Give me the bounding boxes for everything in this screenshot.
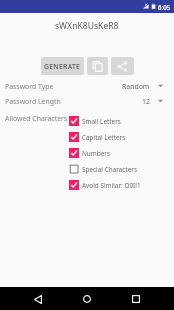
staticText: Numbers (82, 149, 111, 158)
staticText: Allowed Characters (5, 114, 68, 123)
button[interactable]: Recents (125, 288, 147, 310)
staticText: 6:05 (158, 3, 171, 11)
button[interactable]: Small Letters (69, 113, 121, 129)
button[interactable]: Numbers (69, 145, 111, 161)
button[interactable]: Password Type (0, 79, 174, 93)
button[interactable]: Capital Letters (69, 129, 126, 145)
staticText: Small Letters (82, 117, 121, 126)
staticText: GENERATE (44, 62, 81, 71)
staticText: Special Characters (82, 165, 138, 174)
staticText: Capital Letters (82, 133, 126, 142)
button[interactable]: Home (76, 288, 98, 310)
button[interactable]: Avoid Similar: O0Il1 (69, 177, 141, 193)
button[interactable]: Copy (87, 57, 108, 75)
staticText: Password Type (5, 82, 54, 91)
staticText: Password Length (5, 97, 61, 106)
button[interactable]: Password Length (0, 94, 174, 108)
staticText: sWXnK8UsKeR8 (55, 20, 119, 32)
staticText: Random (122, 82, 150, 91)
staticText: Avoid Similar: O0Il1 (82, 181, 141, 190)
staticText: 12 (142, 97, 150, 106)
button[interactable]: GENERATE (41, 57, 84, 75)
button[interactable]: Back (27, 288, 49, 310)
button[interactable]: Share (111, 57, 134, 75)
button[interactable]: Special Characters (69, 161, 138, 177)
